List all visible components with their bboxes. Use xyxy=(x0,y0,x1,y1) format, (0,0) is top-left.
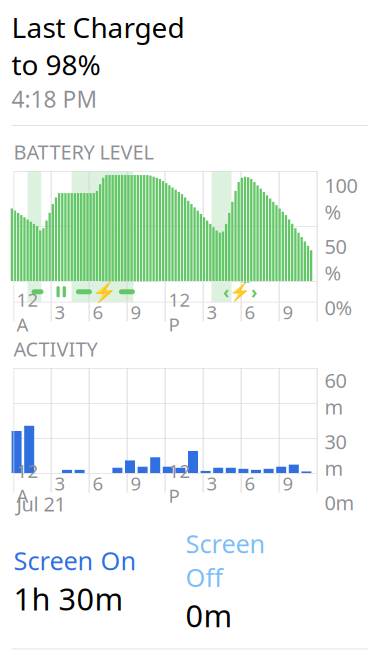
staticText: 3 xyxy=(206,300,217,324)
staticText: ACTIVITY xyxy=(13,335,97,362)
staticText: Screen On xyxy=(13,543,136,577)
staticText: 50% xyxy=(324,233,346,286)
staticText: Screen Off xyxy=(185,527,265,594)
staticText: 6 xyxy=(244,471,255,496)
staticText: 12 A xyxy=(16,458,38,508)
staticText: 9 xyxy=(130,471,141,496)
staticText: 12 P xyxy=(168,458,190,508)
staticText: 3 xyxy=(54,471,65,496)
staticText: ⚡ xyxy=(92,280,117,303)
staticText: 12 P xyxy=(168,287,190,337)
staticText: 6 xyxy=(92,471,103,496)
staticText: BATTERY LEVEL xyxy=(13,138,153,165)
staticText: 30m xyxy=(324,428,346,481)
staticText: 1h 30m xyxy=(13,578,123,619)
staticText: 0m xyxy=(324,489,354,516)
staticText: 6 xyxy=(244,300,255,324)
staticText: ‹⚡› xyxy=(223,280,257,303)
staticText: 9 xyxy=(282,471,293,496)
staticText: Last Charged to 98% xyxy=(11,8,184,83)
staticText: 3 xyxy=(206,471,217,496)
staticText: 100% xyxy=(324,172,357,225)
staticText: 0% xyxy=(324,294,352,321)
staticText: Jul 21 xyxy=(16,490,65,517)
staticText: 12 A xyxy=(16,287,38,337)
staticText: 9 xyxy=(130,300,141,324)
staticText: 4:18 PM xyxy=(11,84,97,114)
staticText: 60m xyxy=(324,367,346,420)
staticText: 3 xyxy=(54,300,65,324)
staticText: 9 xyxy=(282,300,293,324)
staticText: 0m xyxy=(185,595,232,636)
staticText: 6 xyxy=(92,300,103,324)
